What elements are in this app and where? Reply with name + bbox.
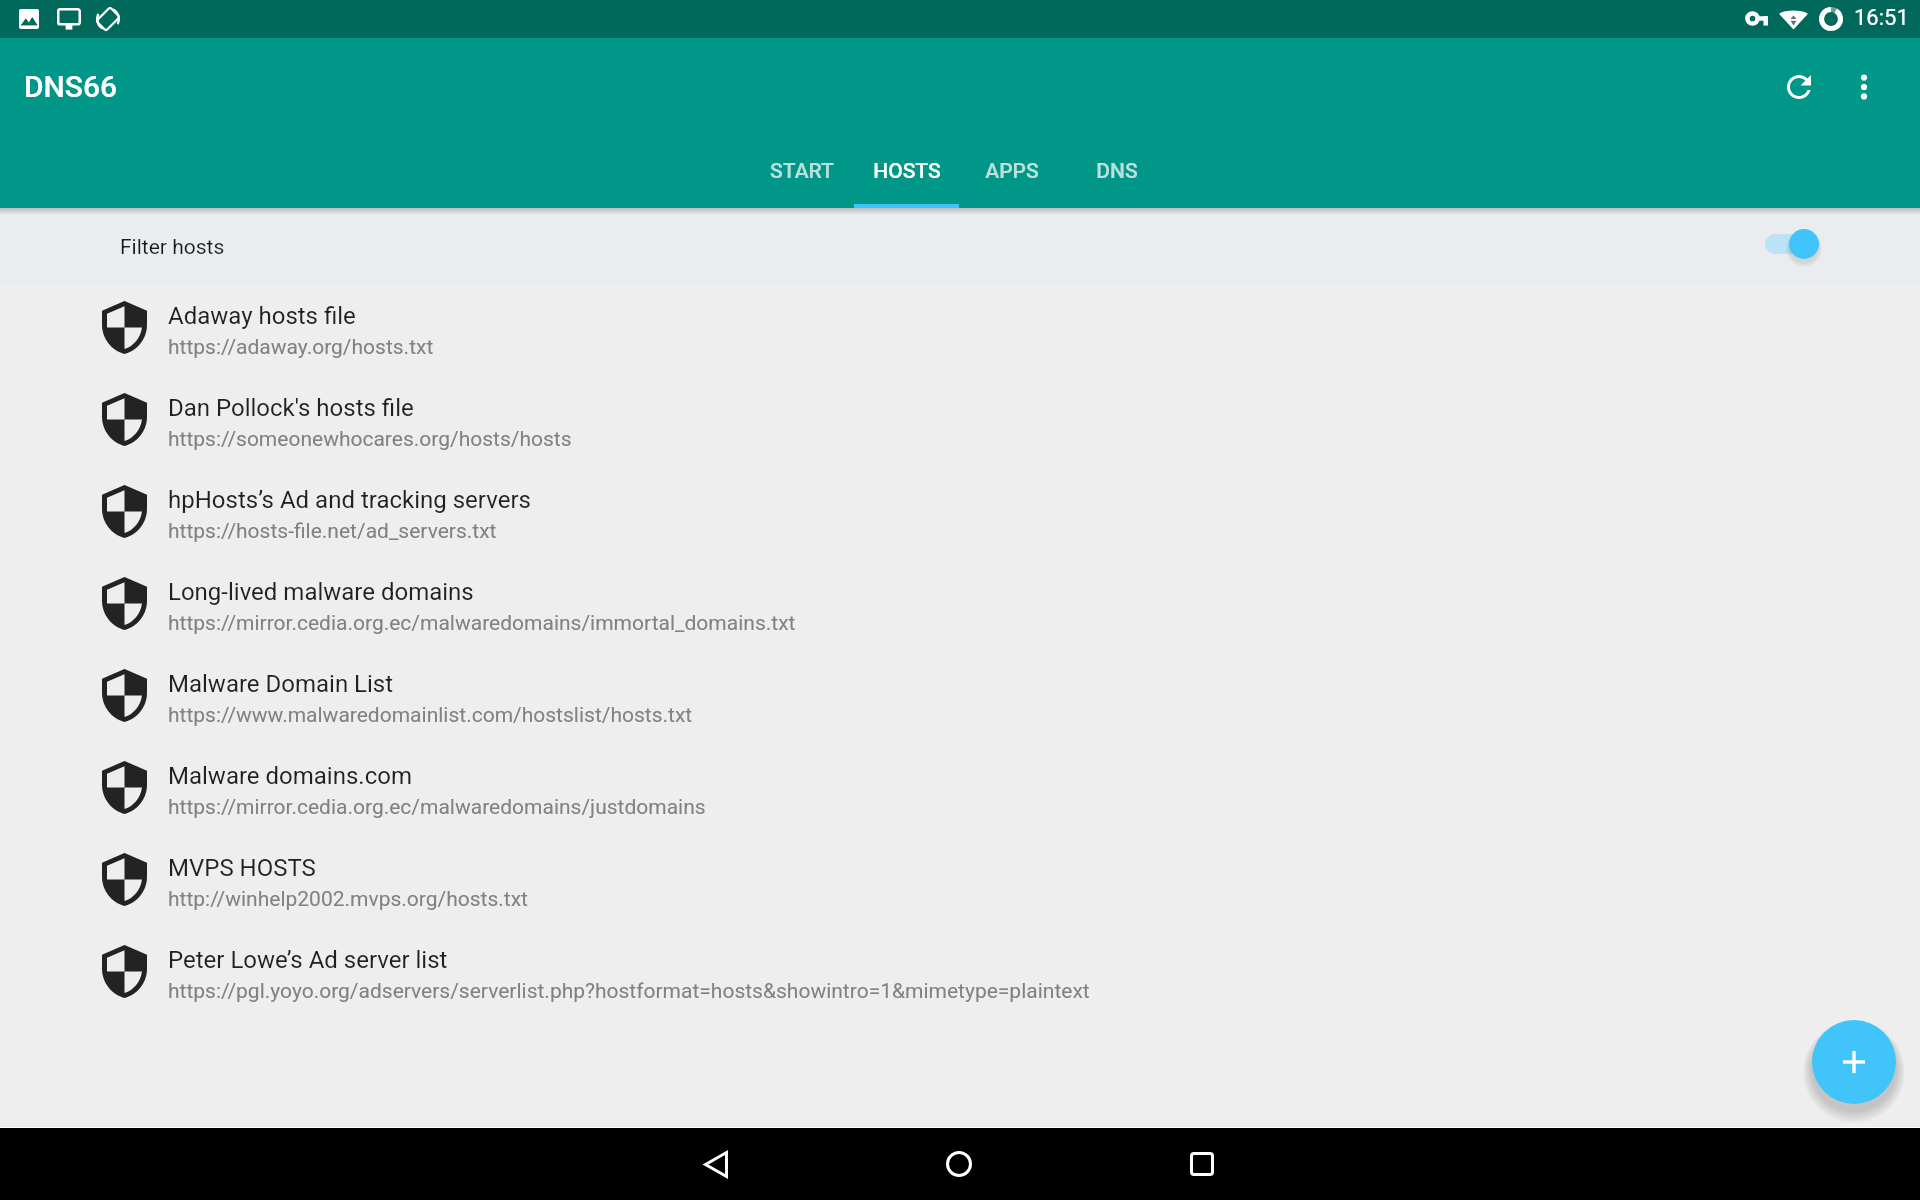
- staticText: 16:51: [1854, 5, 1909, 31]
- button[interactable]: Filter hosts: [0, 208, 1920, 285]
- staticText: MVPS HOSTS: [168, 854, 316, 882]
- button[interactable]: hpHosts’s Ad and tracking servers: [0, 469, 1920, 561]
- staticText: https://www.malwaredomainlist.com/hostsl…: [168, 703, 693, 728]
- button[interactable]: Refresh: [1770, 58, 1827, 115]
- button[interactable]: Add host file: [1812, 1020, 1896, 1104]
- staticText: Malware domains.com: [168, 762, 412, 790]
- button[interactable]: HOSTS: [854, 132, 959, 208]
- button[interactable]: Peter Lowe’s Ad server list: [0, 929, 1920, 1021]
- staticText: https://hosts-file.net/ad_servers.txt: [168, 519, 497, 544]
- button[interactable]: DNS: [1064, 132, 1169, 208]
- staticText: https://adaway.org/hosts.txt: [168, 335, 434, 360]
- staticText: http://winhelp2002.mvps.org/hosts.txt: [168, 887, 528, 912]
- staticText: Long-lived malware domains: [168, 578, 474, 606]
- staticText: https://mirror.cedia.org.ec/malwaredomai…: [168, 795, 706, 820]
- staticText: APPS: [985, 159, 1039, 184]
- staticText: Dan Pollock's hosts file: [168, 394, 414, 422]
- staticText: Filter hosts: [120, 235, 225, 260]
- button[interactable]: Recent apps: [1142, 1128, 1262, 1200]
- staticText: Malware Domain List: [168, 670, 394, 698]
- staticText: DNS66: [24, 69, 118, 104]
- button[interactable]: Back: [656, 1128, 776, 1200]
- staticText: HOSTS: [873, 159, 941, 184]
- staticText: https://someonewhocares.org/hosts/hosts: [168, 427, 572, 452]
- button[interactable]: Filter hosts, on: [1757, 222, 1827, 270]
- staticText: START: [770, 159, 834, 184]
- button[interactable]: Dan Pollock's hosts file: [0, 377, 1920, 469]
- staticText: https://pgl.yoyo.org/adservers/serverlis…: [168, 979, 1090, 1004]
- button[interactable]: MVPS HOSTS: [0, 837, 1920, 929]
- button[interactable]: APPS: [959, 132, 1064, 208]
- button[interactable]: Malware domains.com: [0, 745, 1920, 837]
- button[interactable]: Long-lived malware domains: [0, 561, 1920, 653]
- button[interactable]: Malware Domain List: [0, 653, 1920, 745]
- staticText: Peter Lowe’s Ad server list: [168, 946, 448, 974]
- staticText: hpHosts’s Ad and tracking servers: [168, 486, 531, 514]
- staticText: Adaway hosts file: [168, 302, 356, 330]
- button[interactable]: Adaway hosts file: [0, 285, 1920, 377]
- button[interactable]: Home: [899, 1128, 1019, 1200]
- button[interactable]: START: [749, 132, 854, 208]
- button[interactable]: More options: [1835, 58, 1892, 115]
- staticText: https://mirror.cedia.org.ec/malwaredomai…: [168, 611, 796, 636]
- staticText: DNS: [1096, 159, 1138, 184]
